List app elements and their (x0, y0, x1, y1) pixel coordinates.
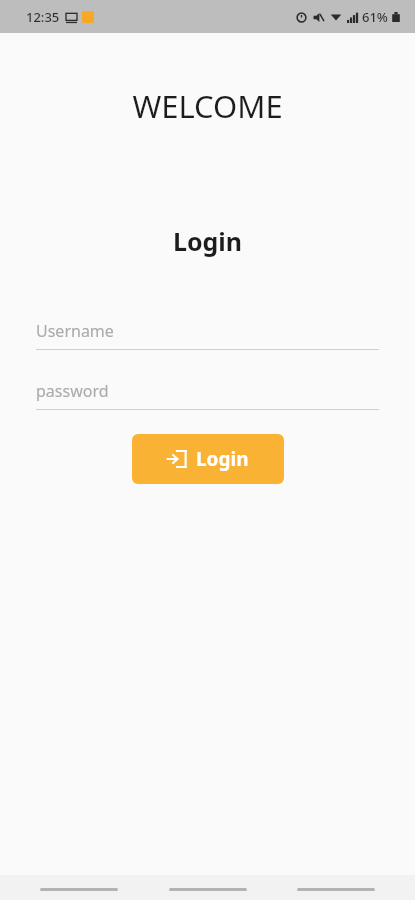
button[interactable]: Navigation (40, 888, 118, 891)
staticText: Username (36, 320, 114, 342)
staticText: Login (196, 446, 249, 472)
staticText: WELCOME (0, 85, 415, 127)
staticText: 61% (362, 8, 388, 26)
button[interactable]: Login (132, 434, 284, 484)
button[interactable]: password (36, 372, 379, 410)
button[interactable]: Username (36, 312, 379, 350)
button[interactable]: Navigation (169, 888, 247, 891)
staticText: password (36, 380, 109, 402)
other: Login (167, 449, 187, 469)
staticText: Login (0, 224, 415, 258)
button[interactable]: Navigation (297, 888, 375, 891)
staticText: 12:35 (26, 8, 60, 26)
